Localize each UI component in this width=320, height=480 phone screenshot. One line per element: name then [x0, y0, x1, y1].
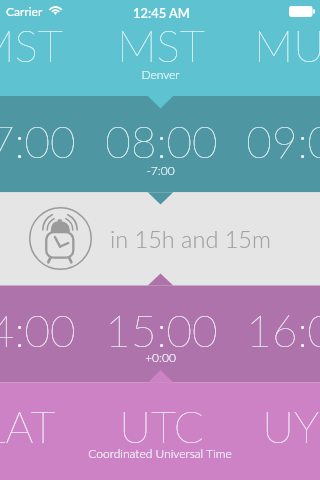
staticText: in 15h and 15m — [110, 225, 271, 253]
button[interactable]: MST — [90, 11, 232, 80]
other: Wi-Fi — [49, 6, 62, 15]
staticText: Coordinated Universal Time — [88, 446, 232, 460]
staticText: MUT — [254, 19, 320, 72]
staticText: 16:00 — [246, 304, 320, 357]
other: Alarm — [29, 207, 92, 270]
staticText: UYS — [262, 400, 320, 453]
staticText: 07:00 — [0, 115, 76, 168]
staticText: Carrier — [6, 4, 43, 18]
staticText: MST — [0, 19, 63, 72]
staticText: +0:00 — [145, 350, 176, 364]
staticText: 08:00 — [105, 115, 218, 168]
staticText: 12:45 AM — [133, 5, 190, 20]
staticText: 15:00 — [105, 304, 218, 357]
staticText: LAT — [0, 400, 56, 453]
button[interactable]: 08:00 — [90, 107, 232, 176]
button[interactable]: MUT — [231, 11, 320, 80]
button[interactable]: 14:00 — [0, 296, 90, 365]
button[interactable]: 07:00 — [0, 107, 90, 176]
button[interactable]: 09:00 — [231, 107, 320, 176]
button[interactable]: UYS — [231, 392, 320, 461]
other: Battery — [289, 6, 315, 17]
button[interactable]: 16:00 — [231, 296, 320, 365]
staticText: 14:00 — [0, 304, 76, 357]
staticText: Denver — [141, 67, 180, 81]
staticText: UTC — [119, 400, 204, 453]
button[interactable]: 15:00 — [90, 296, 232, 365]
staticText: 09:00 — [246, 115, 320, 168]
staticText: MST — [117, 19, 205, 72]
button[interactable]: LAT — [0, 392, 90, 461]
button[interactable]: MST — [0, 11, 90, 80]
button[interactable]: UTC — [90, 392, 232, 461]
staticText: -7:00 — [146, 163, 175, 177]
button[interactable]: Alarm — [0, 192, 320, 285]
